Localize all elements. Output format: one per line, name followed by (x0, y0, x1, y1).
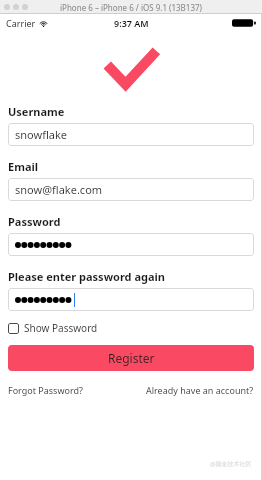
staticText: snow@flake.com (15, 182, 103, 197)
staticText: Show Password (24, 321, 98, 335)
staticText: Forgot Password? (8, 384, 83, 396)
staticText: Carrier (6, 17, 36, 29)
button[interactable] (8, 233, 254, 256)
staticText: Username (8, 104, 65, 119)
staticText: Register (108, 350, 155, 366)
staticText: 9:37 AM (114, 17, 149, 29)
button[interactable]: Forgot Password? (8, 384, 83, 396)
staticText: Email (8, 159, 39, 174)
staticText: snowflake (15, 127, 68, 142)
staticText: iPhone 6 – iPhone 6 / iOS 9.1 (13B137) (60, 2, 202, 13)
button[interactable]: snowflake (8, 123, 254, 146)
button[interactable]: Show Password (8, 320, 98, 336)
button[interactable]: snow@flake.com (8, 178, 254, 201)
staticText: Already have an account? (146, 384, 254, 396)
staticText: Please enter password again (8, 269, 166, 284)
staticText: Password (8, 214, 61, 229)
button[interactable]: Register (8, 345, 254, 371)
button[interactable] (8, 288, 254, 311)
button[interactable]: Already have an account? (146, 384, 254, 396)
staticText: @掘金技术社区 (210, 460, 252, 468)
